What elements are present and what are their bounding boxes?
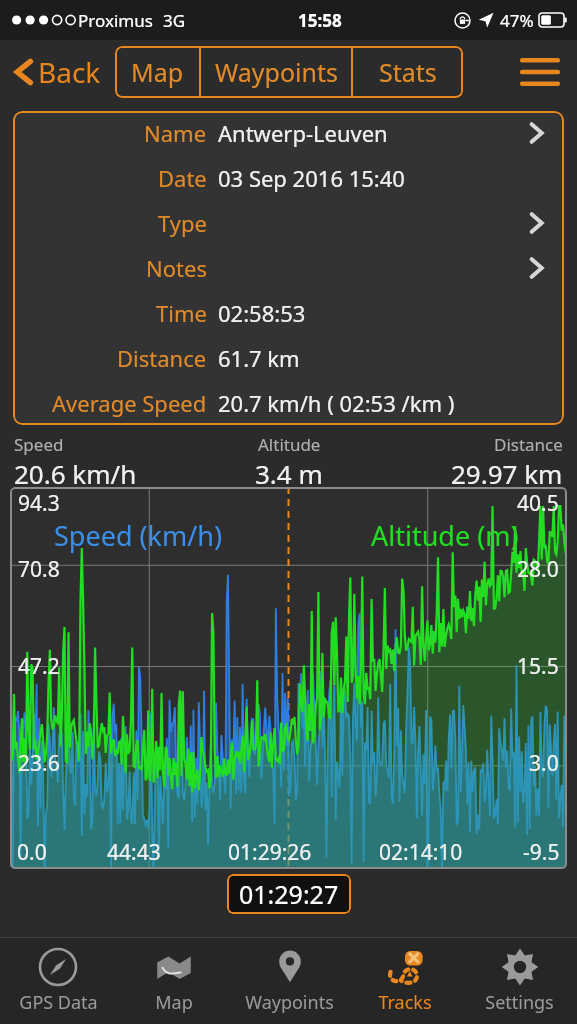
staticText: -9.5	[523, 838, 560, 867]
staticText: 94.3	[18, 489, 60, 518]
staticText: Time	[156, 298, 207, 328]
button[interactable]: Stats	[353, 46, 463, 98]
staticText: 01:29:27	[239, 877, 339, 911]
staticText: Waypoints	[215, 55, 338, 89]
staticText: Notes	[146, 253, 207, 283]
staticText: GPS Data	[19, 990, 98, 1015]
staticText: Altitude	[258, 433, 321, 456]
button[interactable]: Name	[13, 111, 564, 155]
button[interactable]: Menu	[517, 49, 563, 95]
button[interactable]: Map	[116, 938, 232, 1024]
staticText: Speed	[14, 433, 64, 456]
staticText: Map	[131, 55, 184, 89]
staticText: 61.7 km	[218, 343, 300, 373]
staticText: 15:58	[298, 9, 342, 32]
staticText: 03 Sep 2016 15:40	[218, 163, 405, 193]
staticText: 47%	[500, 9, 534, 32]
staticText: Altitude (m)	[371, 517, 519, 554]
staticText: 02:58:53	[218, 298, 306, 328]
staticText: Waypoints	[245, 990, 334, 1015]
staticText: 28.0	[517, 555, 559, 584]
staticText: Tracks	[378, 990, 432, 1015]
staticText: Map	[155, 990, 193, 1015]
button[interactable]: Back	[10, 47, 105, 97]
button[interactable]: Tracks	[347, 938, 462, 1024]
button[interactable]: GPS Data	[0, 938, 116, 1024]
staticText: Antwerp-Leuven	[218, 118, 388, 148]
staticText: Stats	[379, 55, 437, 89]
staticText: Speed (km/h)	[54, 517, 223, 554]
staticText: Settings	[485, 990, 554, 1015]
staticText: 02:14:10	[379, 838, 463, 867]
staticText: Distance	[117, 343, 207, 373]
staticText: 01:29:26	[228, 838, 312, 867]
staticText: Back	[38, 53, 101, 91]
staticText: 15.5	[517, 652, 559, 681]
button[interactable]: Distance	[13, 335, 564, 380]
staticText: 29.97 km	[451, 456, 563, 487]
staticText: 20.7 km/h ( 02:53 /km )	[218, 388, 455, 418]
button[interactable]: Settings	[462, 938, 577, 1024]
button[interactable]: Map	[115, 46, 199, 98]
button[interactable]: Date	[13, 155, 564, 200]
staticText: Date	[158, 163, 207, 193]
button[interactable]: Average Speed	[13, 380, 564, 425]
staticText: Name	[144, 118, 207, 148]
button[interactable]: Waypoints	[201, 46, 351, 98]
staticText: Type	[158, 208, 207, 238]
staticText: 70.8	[18, 555, 60, 584]
staticText: 44:43	[107, 838, 161, 867]
button[interactable]: Time	[13, 290, 564, 335]
staticText: 40.5	[517, 489, 559, 518]
staticText: 0.0	[17, 838, 47, 867]
staticText: Proximus	[78, 9, 153, 32]
button[interactable]: 01:29:27	[227, 874, 351, 914]
staticText: 3G	[163, 9, 186, 32]
staticText: 3.0	[529, 749, 559, 778]
staticText: Average Speed	[52, 388, 207, 418]
button[interactable]: Notes	[13, 245, 564, 290]
staticText: Distance	[494, 433, 563, 456]
staticText: 47.2	[18, 652, 60, 681]
button[interactable]: Waypoints	[232, 938, 347, 1024]
staticText: 23.6	[18, 749, 60, 778]
staticText: 3.4 m	[255, 456, 323, 487]
button[interactable]: Type	[13, 200, 564, 245]
staticText: 20.6 km/h	[14, 456, 137, 487]
